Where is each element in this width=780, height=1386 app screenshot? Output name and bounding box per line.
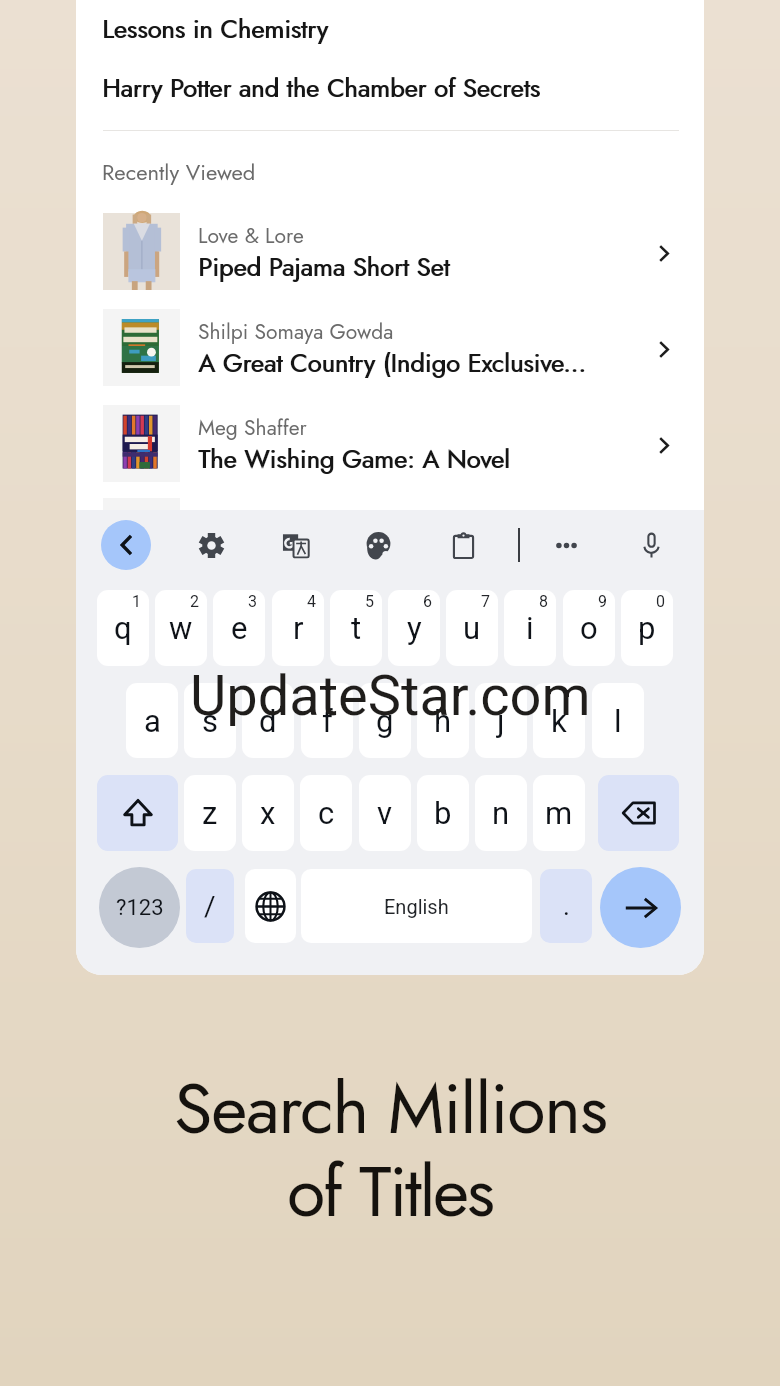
staticText: The Wishing Game: A Novel	[199, 441, 511, 478]
button[interactable]: y	[388, 590, 440, 666]
staticText: 3	[248, 592, 257, 611]
button[interactable]: q	[97, 590, 149, 666]
staticText: w	[169, 610, 193, 646]
button[interactable]: p	[621, 590, 673, 666]
staticText: h	[434, 703, 452, 739]
staticText: Shilpi Somaya Gowda	[198, 317, 394, 347]
button[interactable]: l	[592, 683, 644, 758]
staticText: 1	[132, 592, 141, 611]
button[interactable]: b	[417, 775, 469, 851]
staticText: The Wishing Game: A Novel	[198, 441, 510, 478]
staticText: i	[526, 610, 534, 646]
button[interactable]: j	[475, 683, 527, 758]
button[interactable]: g	[359, 683, 411, 758]
staticText: 4	[307, 592, 316, 611]
staticText: 0	[656, 592, 665, 611]
staticText: b	[434, 795, 452, 831]
staticText: A Great Country (Indigo Exclusive...	[198, 345, 586, 382]
button[interactable]: u	[446, 590, 498, 666]
button[interactable]: s	[184, 683, 236, 758]
staticText: Harry Potter and the Chamber of Secrets	[103, 70, 541, 107]
staticText: .	[563, 891, 570, 921]
staticText: UpdateStar.com	[190, 663, 591, 729]
staticText: ?123	[116, 895, 164, 921]
staticText: m	[545, 795, 573, 831]
button[interactable]: e	[213, 590, 265, 666]
button[interactable]: w	[155, 590, 207, 666]
button[interactable]: c	[300, 775, 352, 851]
button[interactable]: Theme	[353, 520, 403, 570]
button[interactable]: x	[242, 775, 294, 851]
button[interactable]: i	[504, 590, 556, 666]
button[interactable]: v	[359, 775, 411, 851]
button[interactable]: t	[330, 590, 382, 666]
button[interactable]: r	[272, 590, 324, 666]
staticText: Recently Viewed	[102, 156, 256, 188]
button[interactable]: Shilpi Somaya Gowda	[76, 301, 704, 397]
button[interactable]: ?123	[99, 867, 180, 948]
staticText: q	[114, 610, 132, 646]
button[interactable]: Back	[101, 520, 151, 570]
button[interactable]: n	[475, 775, 527, 851]
button[interactable]: .	[540, 869, 592, 943]
button[interactable]: Translate	[270, 520, 320, 570]
button[interactable]: z	[184, 775, 236, 851]
button[interactable]: Clipboard	[438, 520, 488, 570]
button[interactable]: Meg Shaffer	[76, 397, 704, 493]
staticText: Love & Lore	[198, 221, 304, 251]
button[interactable]: a	[126, 683, 178, 758]
button[interactable]: More options	[541, 520, 591, 570]
button[interactable]: k	[533, 683, 585, 758]
staticText: 8	[539, 592, 548, 611]
staticText: l	[614, 703, 622, 739]
staticText: r	[293, 610, 304, 646]
staticText: c	[318, 795, 335, 831]
button[interactable]: Settings	[186, 520, 236, 570]
staticText: 7	[481, 592, 490, 611]
staticText: Search Millions	[174, 1058, 607, 1159]
staticText: 9	[598, 592, 607, 611]
staticText: a	[144, 703, 161, 739]
button[interactable]: h	[417, 683, 469, 758]
staticText: y	[407, 610, 422, 646]
staticText: A Great Country (Indigo Exclusive...	[199, 345, 587, 382]
button[interactable]: d	[242, 683, 294, 758]
staticText: z	[202, 795, 218, 831]
button[interactable]: Love & Lore	[76, 205, 704, 301]
button[interactable]: f	[301, 683, 353, 758]
staticText: Piped Pajama Short Set	[199, 249, 451, 286]
staticText: English	[384, 895, 449, 918]
staticText: o	[580, 610, 598, 646]
staticText: u	[463, 610, 481, 646]
staticText: g	[376, 703, 394, 739]
staticText: Lessons in Chemistry	[102, 11, 328, 48]
staticText: s	[202, 703, 218, 739]
button[interactable]: Search	[600, 867, 681, 948]
staticText: p	[638, 610, 656, 646]
staticText: k	[551, 703, 567, 739]
staticText: e	[231, 610, 248, 646]
button[interactable]: Shift	[97, 775, 178, 851]
staticText: Lessons in Chemistry	[103, 11, 329, 48]
button[interactable]: English	[301, 869, 532, 943]
staticText: n	[492, 795, 510, 831]
staticText: Meg Shaffer	[198, 413, 307, 443]
staticText: 5	[365, 592, 374, 611]
staticText: t	[351, 610, 362, 646]
staticText: f	[322, 703, 333, 739]
button[interactable]: /	[186, 869, 234, 943]
staticText: 2	[190, 592, 199, 611]
button[interactable]: o	[563, 590, 615, 666]
staticText: j	[497, 703, 505, 739]
staticText: Harry Potter and the Chamber of Secrets	[102, 70, 540, 107]
staticText: d	[259, 703, 277, 739]
staticText: v	[377, 795, 393, 831]
staticText: of Titles	[287, 1141, 493, 1242]
button[interactable]: Change keyboard language	[245, 869, 296, 943]
button[interactable]: Backspace	[598, 775, 679, 851]
staticText: Piped Pajama Short Set	[198, 249, 450, 286]
button[interactable]: Voice input	[626, 520, 676, 570]
button[interactable]: m	[533, 775, 585, 851]
staticText: 6	[423, 592, 432, 611]
staticText: x	[260, 795, 276, 831]
